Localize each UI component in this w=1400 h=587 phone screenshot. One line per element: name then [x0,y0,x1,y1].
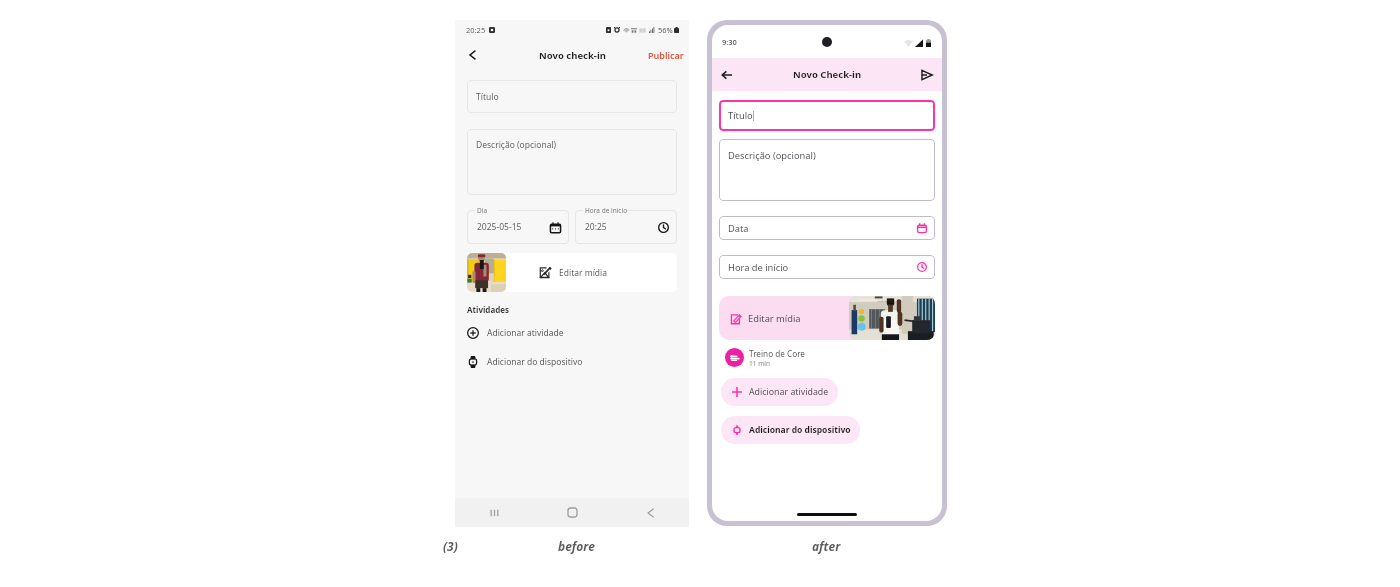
staticText: Adicionar atividade [749,386,829,398]
staticText: Editar mídia [748,312,801,325]
staticText: Hora de início [728,261,789,274]
button[interactable]: Voltar [463,46,481,64]
staticText: Descrição (opcional) [476,139,557,151]
staticText: Atividades [467,304,510,315]
button[interactable]: Adicionar do dispositivo [721,416,860,444]
staticText: Publicar [648,49,684,61]
staticText: after [812,538,841,554]
staticText: Título [728,109,753,122]
button[interactable]: Descrição (opcional) [467,129,677,195]
staticText: Dia [477,206,488,215]
staticText: Hora de início [585,206,628,215]
staticText: 9:30 [722,37,737,47]
staticText: Novo check-in [539,49,606,62]
staticText: Descrição (opcional) [728,149,816,162]
button[interactable]: Adicionar atividade [721,378,838,406]
button[interactable]: Publicar [648,49,684,61]
staticText: Adicionar atividade [487,327,564,339]
button[interactable]: Data [719,216,935,240]
button[interactable]: Adicionar do dispositivo [467,353,677,371]
staticText: Editar mídia [559,267,608,279]
staticText: Adicionar do dispositivo [749,424,851,436]
staticText: 20:25 [466,25,486,35]
button[interactable]: Título [467,80,677,113]
button[interactable]: Publicar [918,66,936,84]
staticText: (3) [443,538,458,554]
button[interactable]: Adicionar atividade [467,324,677,342]
button[interactable]: 2025-05-15 [477,210,561,244]
staticText: 20:25 [585,221,607,233]
button[interactable]: Home [533,498,611,527]
button[interactable]: Treino de Core [725,348,935,367]
staticText: Título [476,91,499,103]
staticText: before [558,538,595,554]
button[interactable]: Editar mídia [719,296,935,340]
button[interactable]: Back [611,498,689,527]
staticText: 2025-05-15 [477,221,522,233]
button[interactable]: Recents [455,498,533,527]
staticText: 56% [658,25,673,35]
button[interactable]: Título [719,100,935,131]
button[interactable]: Voltar [718,66,736,84]
staticText: 11 min [749,359,770,367]
button[interactable]: 20:25 [585,210,669,244]
staticText: Novo Check-in [793,68,862,81]
staticText: Treino de Core [749,348,805,359]
button[interactable]: Descrição (opcional) [719,139,935,201]
button[interactable]: Hora de início [719,255,935,279]
button[interactable]: Editar mídia [467,253,677,292]
staticText: Data [728,222,749,235]
staticText: Adicionar do dispositivo [487,356,583,368]
